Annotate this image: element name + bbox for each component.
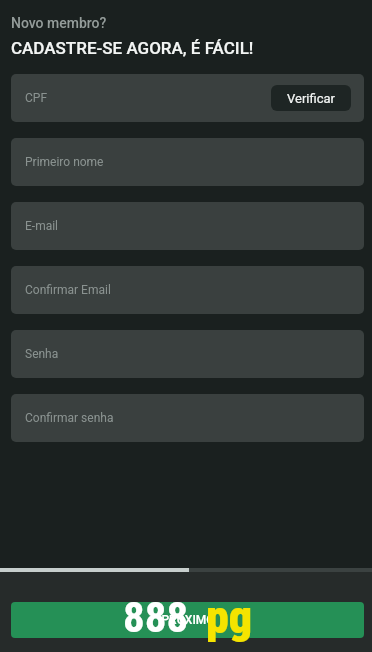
staticText: PRÓXIMO: [161, 613, 215, 627]
button[interactable]: Senha: [11, 330, 364, 378]
staticText: CPF: [25, 91, 48, 105]
staticText: Senha: [25, 347, 59, 361]
button[interactable]: E-mail: [11, 202, 364, 250]
staticText: Primeiro nome: [25, 155, 104, 169]
button[interactable]: CPF: [11, 74, 364, 122]
button[interactable]: Verificar CPF: [271, 85, 351, 111]
staticText: E-mail: [25, 219, 59, 233]
button[interactable]: Primeiro nome: [11, 138, 364, 186]
staticText: Confirmar Email: [25, 283, 111, 297]
button[interactable]: Confirmar Email: [11, 266, 364, 314]
staticText: Novo membro?: [11, 15, 107, 31]
staticText: CADASTRE-SE AGORA, É FÁCIL!: [11, 38, 254, 58]
button[interactable]: Confirmar senha: [11, 394, 364, 442]
staticText: pg: [206, 590, 253, 644]
staticText: 888: [123, 592, 189, 642]
staticText: Confirmar senha: [25, 411, 114, 425]
button[interactable]: PRÓXIMO: [11, 602, 364, 638]
staticText: Verificar: [287, 91, 335, 106]
